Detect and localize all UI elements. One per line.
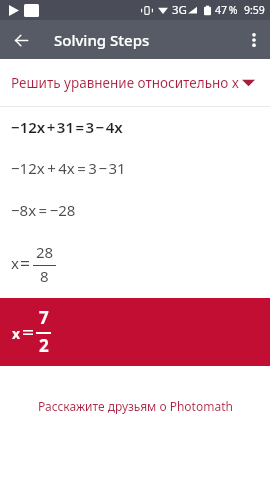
button[interactable]: Решить уравнение относительно x bbox=[0, 59, 270, 106]
button[interactable]: More options bbox=[237, 23, 270, 56]
staticText: x bbox=[11, 253, 19, 273]
button[interactable]: Back bbox=[3, 22, 39, 58]
staticText: 28 bbox=[36, 242, 54, 262]
staticText: x bbox=[12, 324, 21, 343]
staticText: 8 bbox=[40, 266, 49, 286]
staticText: 9:59 bbox=[244, 3, 265, 17]
staticText: Расскажите друзьям о Photomath bbox=[38, 398, 233, 414]
staticText: 2 bbox=[39, 334, 49, 357]
staticText: Решить уравнение относительно x bbox=[11, 74, 239, 92]
button[interactable]: Расскажите друзьям о Photomath bbox=[0, 395, 270, 417]
staticText: −12x + 4x = 3 − 31 bbox=[11, 158, 126, 178]
staticText: −12x + 31 = 3 − 4x bbox=[11, 117, 123, 137]
staticText: −8x = −28 bbox=[11, 200, 76, 220]
staticText: 3G bbox=[172, 2, 187, 18]
staticText: Solving Steps bbox=[54, 30, 150, 50]
staticText: 47 % bbox=[215, 3, 238, 17]
staticText: 7 bbox=[39, 306, 49, 329]
